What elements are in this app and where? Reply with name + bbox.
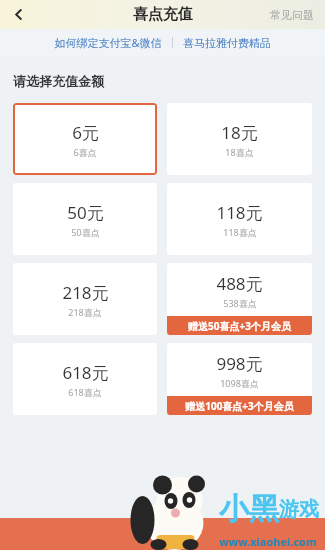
- button[interactable]: 如何绑定支付宝&微信: [51, 31, 165, 54]
- staticText: 1098喜点: [220, 377, 259, 389]
- button[interactable]: 618元: [13, 343, 157, 415]
- staticText: 6喜点: [73, 146, 97, 158]
- staticText: 218喜点: [68, 306, 102, 318]
- staticText: 118元: [216, 201, 263, 224]
- staticText: 请选择充值金额: [13, 73, 104, 89]
- staticText: 赠送100喜点+3个月会员: [185, 399, 294, 413]
- staticText: 488元: [216, 272, 263, 295]
- staticText: 538喜点: [223, 297, 257, 309]
- staticText: 喜点充值: [133, 5, 193, 24]
- staticText: 50喜点: [71, 226, 100, 238]
- staticText: 6元: [72, 121, 99, 144]
- staticText: 赠送50喜点+3个月会员: [188, 319, 291, 333]
- staticText: 118喜点: [223, 226, 257, 238]
- button[interactable]: 6元: [13, 103, 157, 175]
- staticText: www.xiaohei.com: [219, 534, 317, 549]
- staticText: 喜马拉雅付费精品: [183, 36, 271, 50]
- staticText: 618喜点: [68, 386, 102, 398]
- button[interactable]: 50元: [13, 183, 157, 255]
- button[interactable]: 998元: [167, 343, 312, 415]
- button[interactable]: 18元: [167, 103, 312, 175]
- staticText: 998元: [216, 352, 263, 375]
- staticText: 18元: [221, 121, 258, 144]
- staticText: 218元: [62, 281, 109, 304]
- button[interactable]: 喜马拉雅付费精品: [180, 32, 274, 54]
- button[interactable]: 488元: [167, 263, 312, 335]
- button[interactable]: 118元: [167, 183, 312, 255]
- button[interactable]: Back: [0, 0, 36, 29]
- staticText: 如何绑定支付宝&微信: [54, 35, 162, 50]
- staticText: 游戏: [279, 497, 319, 522]
- staticText: 小黑: [219, 490, 279, 528]
- staticText: 50元: [67, 201, 104, 224]
- staticText: 常见问题: [270, 8, 314, 22]
- button[interactable]: 218元: [13, 263, 157, 335]
- staticText: 18喜点: [225, 146, 254, 158]
- staticText: 618元: [62, 361, 109, 384]
- button[interactable]: 常见问题: [259, 3, 325, 27]
